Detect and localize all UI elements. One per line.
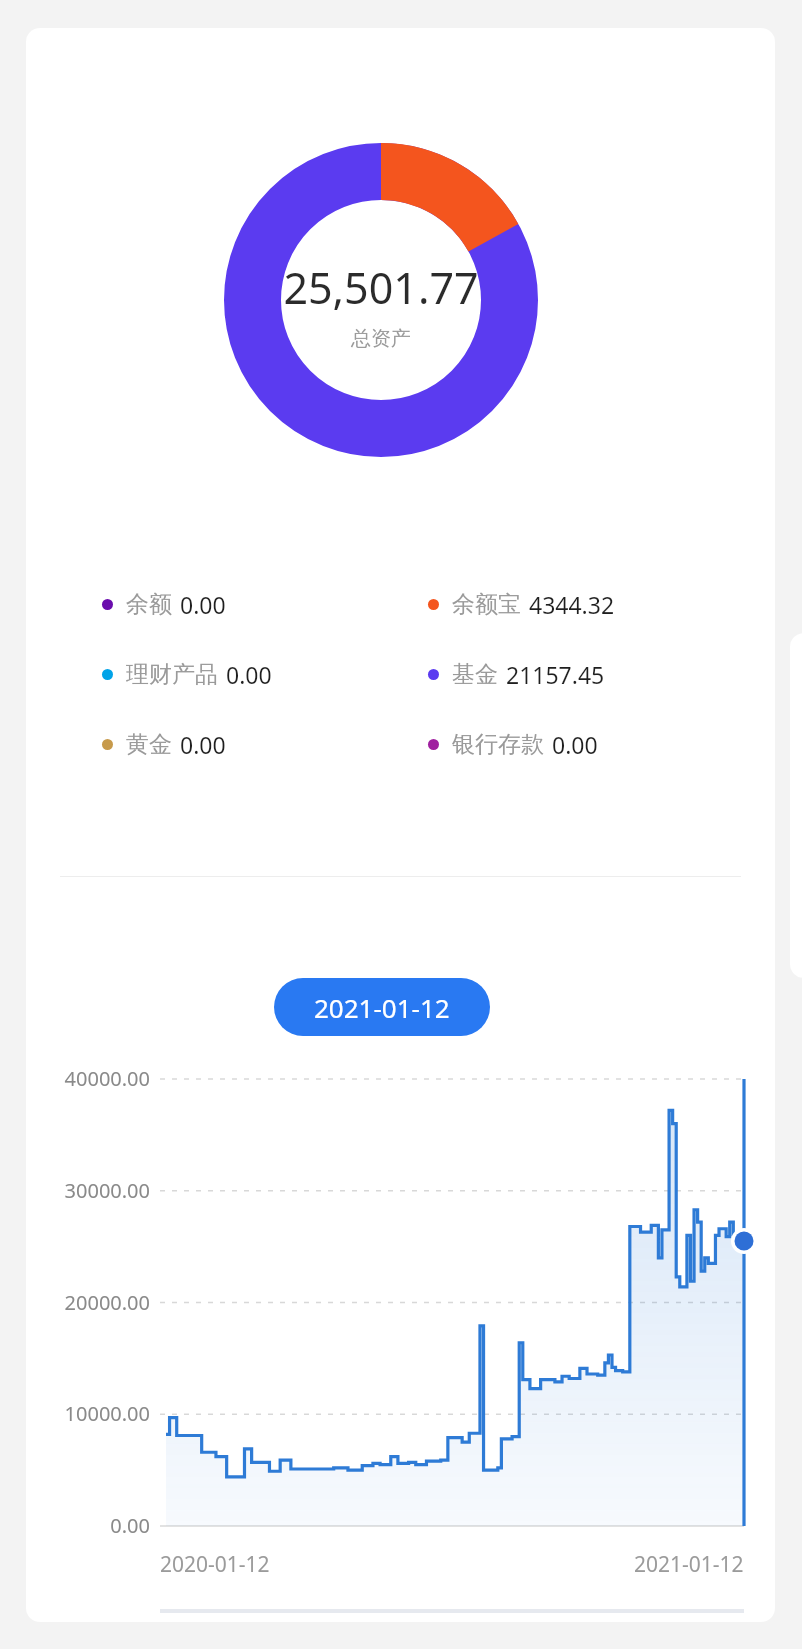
staticText: 理财产品: [126, 660, 218, 689]
staticText: 银行存款: [452, 730, 544, 759]
staticText: 余额宝: [452, 590, 521, 619]
staticText: 0.00: [180, 589, 226, 620]
staticText: 25,501.77: [283, 258, 479, 317]
staticText: 余额: [126, 590, 172, 619]
button[interactable]: Select date 2021-01-12: [274, 978, 490, 1036]
staticText: 10000.00: [64, 1400, 150, 1427]
staticText: 2021-01-12: [314, 990, 450, 1025]
staticText: 2020-01-12: [160, 1550, 270, 1579]
button[interactable]: 基金: [428, 639, 775, 709]
staticText: 0.00: [180, 729, 226, 760]
button[interactable]: 余额: [102, 569, 400, 639]
staticText: 黄金: [126, 730, 172, 759]
button[interactable]: 黄金: [102, 709, 400, 779]
staticText: 总资产: [351, 326, 411, 351]
staticText: 2021-01-12: [634, 1550, 744, 1579]
staticText: 0.00: [110, 1512, 150, 1539]
button[interactable]: 银行存款: [428, 709, 775, 779]
staticText: 20000.00: [64, 1289, 150, 1316]
staticText: 0.00: [226, 659, 272, 690]
button[interactable]: 余额宝: [428, 569, 775, 639]
staticText: 21157.45: [506, 659, 605, 690]
staticText: 40000.00: [64, 1065, 150, 1092]
staticText: 0.00: [552, 729, 598, 760]
staticText: 4344.32: [529, 589, 615, 620]
staticText: 30000.00: [64, 1177, 150, 1204]
staticText: 基金: [452, 660, 498, 689]
button[interactable]: 理财产品: [102, 639, 400, 709]
